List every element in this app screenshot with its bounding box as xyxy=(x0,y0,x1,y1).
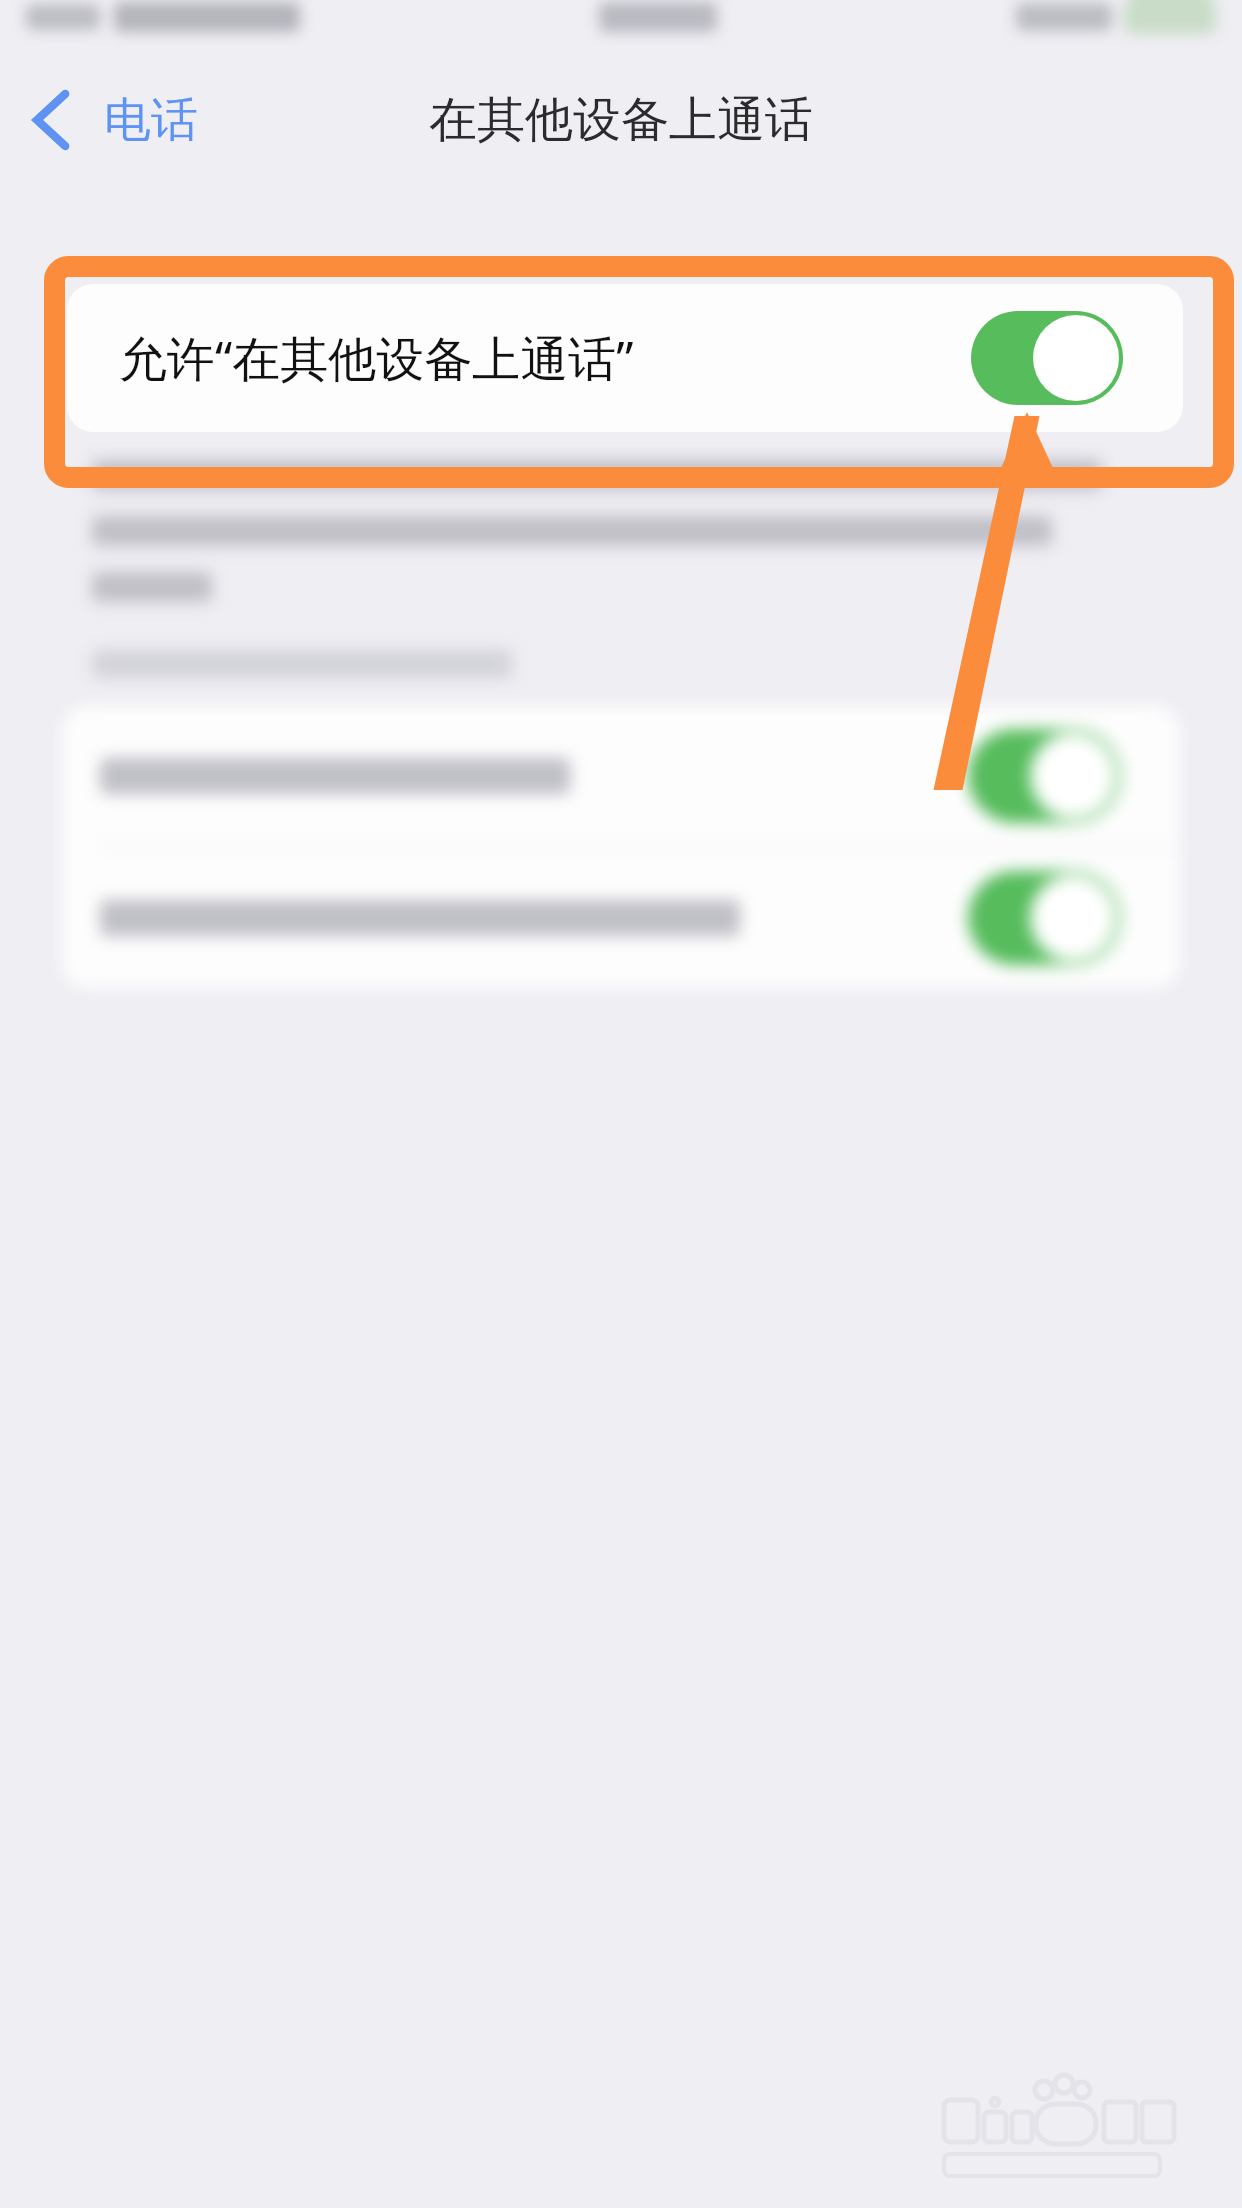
button[interactable]: 电话 xyxy=(0,77,216,163)
staticText: 在其他设备上通话 xyxy=(429,90,813,150)
button[interactable] xyxy=(62,848,1180,988)
button[interactable]: 允许“在其他设备上通话”开关，已开启 xyxy=(971,311,1123,405)
button[interactable] xyxy=(62,706,1180,846)
staticText: 允许“在其他设备上通话” xyxy=(119,325,634,391)
button[interactable]: 允许“在其他设备上通话” xyxy=(67,284,1183,432)
staticText: 电话 xyxy=(104,91,198,150)
